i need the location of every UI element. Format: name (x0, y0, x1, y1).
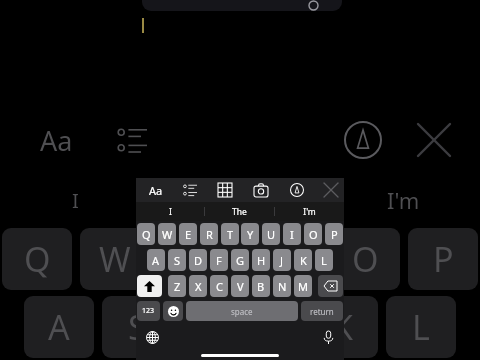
button[interactable]: return (301, 301, 343, 321)
staticText: K (300, 253, 307, 268)
button[interactable]: space (186, 301, 298, 321)
staticText: M (298, 279, 308, 294)
button[interactable]: Z (168, 275, 186, 297)
button[interactable]: L (315, 249, 333, 271)
staticText: H (257, 253, 266, 268)
staticText: Aa (149, 183, 163, 198)
staticText: L (412, 304, 430, 350)
staticText: X (195, 279, 202, 294)
button[interactable]: G (231, 249, 249, 271)
button[interactable]: Table (215, 180, 235, 200)
button[interactable]: Lists (180, 180, 200, 200)
button[interactable]: N (273, 275, 291, 297)
button[interactable]: The (205, 202, 274, 221)
staticText: Z (174, 279, 181, 294)
staticText: L (321, 253, 327, 268)
button[interactable]: I (136, 202, 204, 221)
staticText: I (169, 206, 172, 218)
button[interactable]: Close (321, 180, 341, 200)
staticText: W (162, 227, 173, 242)
staticText: O (309, 227, 318, 242)
button[interactable]: F (210, 249, 228, 271)
button[interactable]: W (158, 223, 176, 245)
staticText: J (280, 253, 284, 268)
staticText: E (184, 236, 203, 282)
staticText: Aa (40, 122, 73, 159)
staticText: B (257, 279, 265, 294)
staticText: R (206, 227, 213, 242)
staticText: S (174, 253, 181, 268)
button[interactable]: O (304, 223, 322, 245)
staticText: V (237, 279, 244, 294)
staticText: P (433, 236, 454, 282)
button[interactable]: H (252, 249, 270, 271)
staticText: U (267, 227, 276, 242)
button[interactable]: Q (137, 223, 155, 245)
staticText: I'm (387, 185, 420, 215)
staticText: O (352, 236, 379, 282)
staticText: 123 (142, 306, 155, 316)
staticText: The (232, 206, 247, 218)
button[interactable]: Markup (287, 180, 307, 200)
button[interactable]: Aa (145, 180, 167, 200)
staticText: P (331, 227, 338, 242)
staticText: S (128, 304, 147, 350)
staticText: G (236, 253, 245, 268)
button[interactable]: X (189, 275, 207, 297)
staticText: I'm (303, 206, 316, 218)
button[interactable]: Dictate (318, 327, 338, 347)
staticText: D (194, 253, 203, 268)
button[interactable]: Y (241, 223, 259, 245)
staticText: I (72, 187, 79, 214)
button[interactable]: I'm (275, 202, 344, 221)
button[interactable]: Camera (251, 180, 271, 200)
button[interactable]: M (294, 275, 312, 297)
staticText: N (278, 279, 287, 294)
staticText: space (231, 306, 253, 317)
button[interactable]: Backspace (318, 275, 343, 297)
button[interactable]: V (231, 275, 249, 297)
button[interactable]: B (252, 275, 270, 297)
staticText: A (48, 304, 70, 350)
button[interactable]: Switch keyboard (142, 327, 162, 347)
button[interactable]: Shift (137, 275, 162, 297)
staticText: I (290, 227, 294, 242)
staticText: Q (142, 227, 151, 242)
staticText: Y (247, 227, 254, 242)
button[interactable]: C (210, 275, 228, 297)
staticText: Q (24, 236, 51, 282)
button[interactable]: E (179, 223, 197, 245)
staticText: E (185, 227, 192, 242)
button[interactable]: K (294, 249, 312, 271)
staticText: return (310, 306, 334, 317)
button[interactable]: U (262, 223, 280, 245)
staticText: W (99, 236, 131, 282)
button[interactable]: D (189, 249, 207, 271)
staticText: I (281, 236, 293, 282)
staticText: K (332, 304, 354, 350)
button[interactable]: S (168, 249, 186, 271)
staticText: T (227, 227, 234, 242)
button[interactable]: 123 (137, 301, 160, 321)
button[interactable]: T (221, 223, 239, 245)
button[interactable]: Emoji (163, 301, 183, 321)
staticText: F (216, 253, 222, 268)
staticText: C (216, 279, 223, 294)
button[interactable]: I (283, 223, 301, 245)
staticText: A (152, 253, 160, 268)
button[interactable]: R (200, 223, 218, 245)
button[interactable]: A (147, 249, 165, 271)
button[interactable]: P (325, 223, 343, 245)
button[interactable]: J (273, 249, 291, 271)
